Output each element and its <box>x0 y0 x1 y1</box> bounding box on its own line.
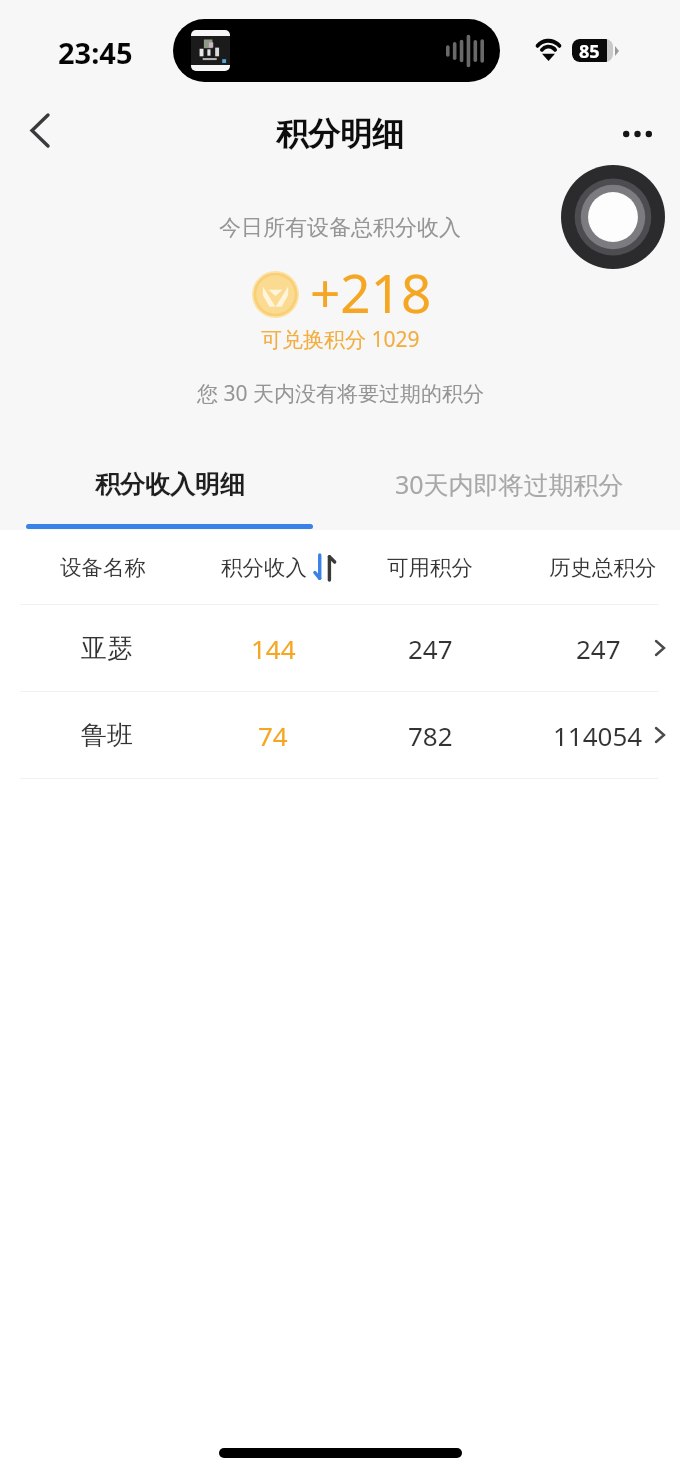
staticText: 可用积分 <box>387 554 473 581</box>
button[interactable]: 30天内即将过期积分 <box>366 448 653 520</box>
staticText: 782 <box>408 718 453 753</box>
staticText: 144 <box>251 631 296 666</box>
staticText: 设备名称 <box>60 554 146 581</box>
staticText: 85 <box>579 39 600 62</box>
button[interactable]: Back <box>4 96 74 172</box>
button[interactable]: 亚瑟 detail <box>0 605 680 691</box>
staticText: 您 30 天内没有将要过期的积分 <box>197 379 484 408</box>
button[interactable]: 积分收入明细 <box>26 448 313 520</box>
staticText: 历史总积分 <box>549 554 657 581</box>
staticText: 可兑换积分 1029 <box>261 325 420 354</box>
staticText: 亚瑟 <box>81 632 133 665</box>
staticText: 23:45 <box>58 33 133 72</box>
staticText: 30天内即将过期积分 <box>395 467 624 501</box>
staticText: 247 <box>408 631 453 666</box>
staticText: +218 <box>310 256 432 328</box>
staticText: 积分收入明细 <box>95 469 245 500</box>
button[interactable]: More options <box>606 96 676 172</box>
staticText: 积分明细 <box>276 114 404 154</box>
button[interactable]: Sort by points income <box>312 554 338 580</box>
staticText: 74 <box>258 718 288 753</box>
button[interactable]: 鲁班 detail <box>0 692 680 778</box>
staticText: 今日所有设备总积分收入 <box>219 214 461 242</box>
staticText: 积分收入 <box>221 554 307 581</box>
staticText: 鲁班 <box>81 719 133 752</box>
staticText: 247 <box>576 631 621 666</box>
staticText: 114054 <box>553 718 643 753</box>
